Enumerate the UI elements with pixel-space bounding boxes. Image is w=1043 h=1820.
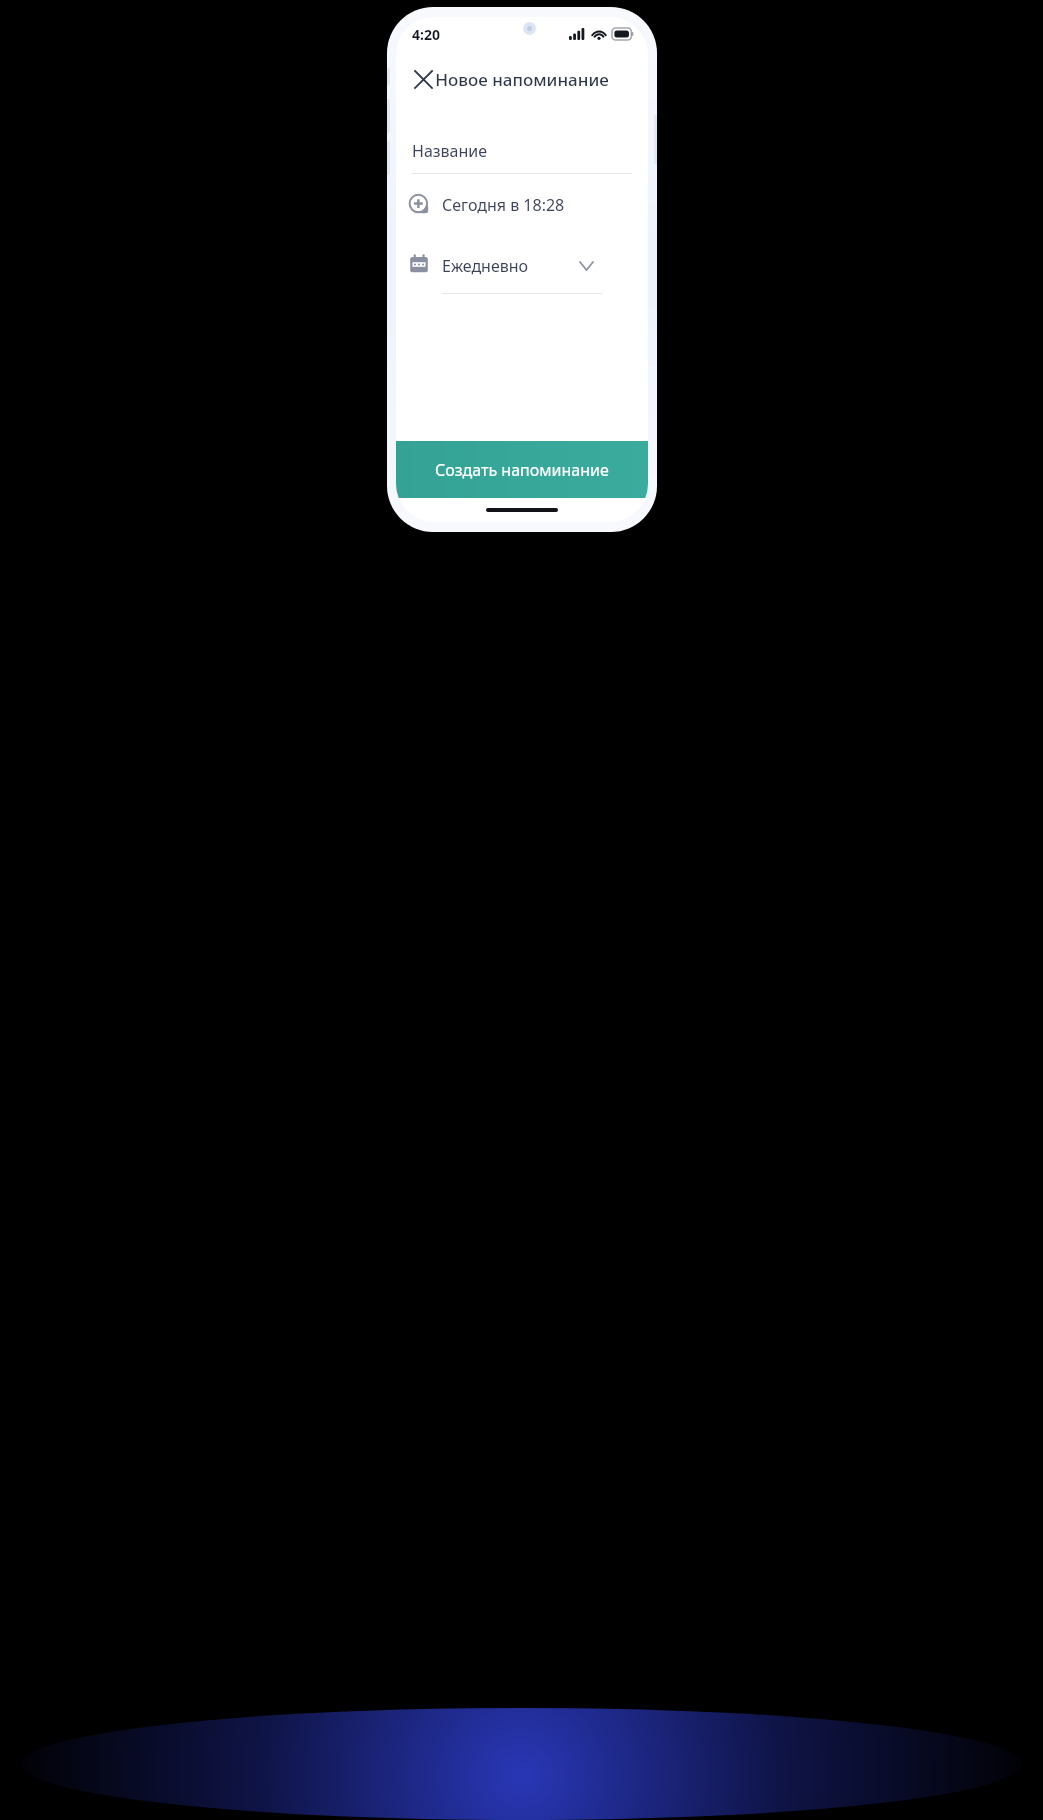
staticText: Ежедневно <box>442 255 529 277</box>
other: Развернуть <box>576 256 596 276</box>
button[interactable]: Сегодня в 18:28 <box>396 174 648 234</box>
staticText: 4:20 <box>412 25 440 44</box>
staticText: Новое напоминание <box>435 68 609 91</box>
staticText: Создать напоминание <box>435 459 609 481</box>
button[interactable]: Создать напоминание <box>396 441 648 498</box>
staticText: Название <box>412 140 488 162</box>
button[interactable]: Закрыть <box>402 58 444 100</box>
button[interactable]: Ежедневно <box>396 234 648 294</box>
staticText: Сегодня в 18:28 <box>442 194 565 216</box>
button[interactable]: Название <box>396 129 648 173</box>
